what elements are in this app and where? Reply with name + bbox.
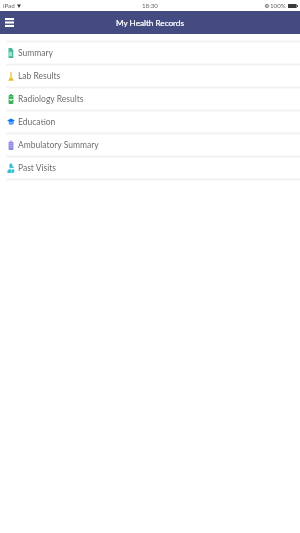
staticText: Past Visits [18,163,57,173]
button[interactable]: Lab Results [0,65,300,87]
staticText: 100% [270,2,286,9]
button[interactable]: Summary [0,42,300,64]
button[interactable]: Radiology Results [0,88,300,110]
button[interactable]: Open navigation menu [0,11,19,34]
staticText: My Health Records [116,18,184,28]
staticText: Summary [18,48,53,58]
staticText: Education [18,117,56,127]
button[interactable]: Ambulatory Summary [0,134,300,156]
staticText: Radiology Results [18,94,84,104]
staticText: iPad [3,2,15,9]
button[interactable]: Education [0,111,300,133]
staticText: 18:30 [142,2,158,9]
button[interactable]: Past Visits [0,157,300,179]
staticText: Lab Results [18,71,61,81]
staticText: Ambulatory Summary [18,140,99,150]
